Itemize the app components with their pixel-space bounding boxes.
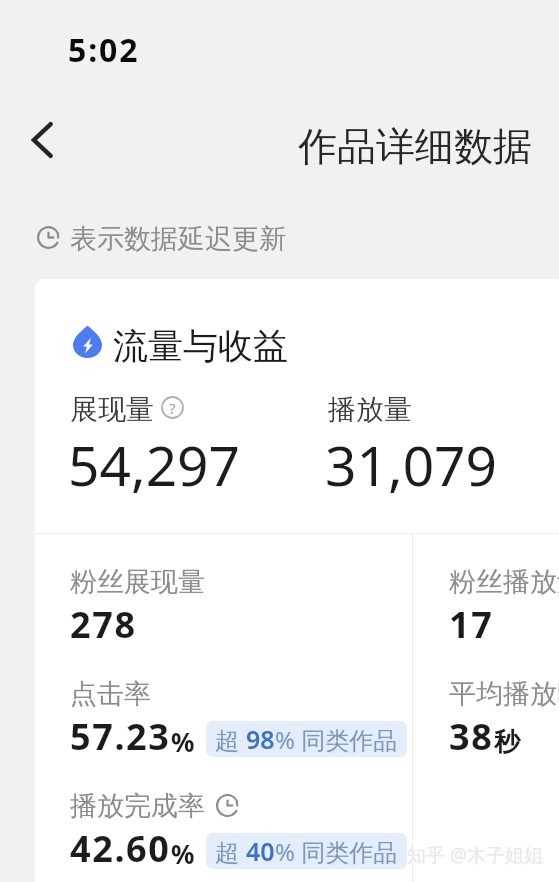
staticText: 42.60 bbox=[70, 824, 171, 873]
button[interactable]: 超 bbox=[206, 833, 407, 869]
staticText: 粉丝播放量 bbox=[449, 565, 559, 599]
staticText: 播放完成率 bbox=[70, 789, 205, 823]
staticText: 流量与收益 bbox=[113, 324, 288, 368]
button[interactable]: Back bbox=[14, 112, 70, 168]
staticText: 作品详细数据 bbox=[298, 122, 532, 171]
staticText: 40 bbox=[246, 834, 275, 868]
staticText: 54,297 bbox=[68, 427, 241, 502]
staticText: 278 bbox=[70, 600, 137, 649]
staticText: 平均播放时长 bbox=[449, 677, 559, 711]
staticText: % 同类作品 bbox=[275, 723, 398, 756]
button[interactable]: 超 bbox=[206, 721, 407, 757]
staticText: 点击率 bbox=[70, 677, 151, 711]
staticText: % bbox=[171, 724, 195, 759]
staticText: 超 bbox=[215, 835, 246, 868]
staticText: 38 bbox=[449, 712, 494, 761]
staticText: 57.23 bbox=[70, 712, 171, 761]
staticText: 98 bbox=[246, 722, 275, 756]
staticText: 粉丝展现量 bbox=[70, 565, 205, 599]
staticText: 表示数据延迟更新 bbox=[70, 222, 286, 256]
staticText: 播放量 bbox=[328, 392, 412, 427]
staticText: 5:02 bbox=[68, 28, 140, 72]
staticText: % bbox=[171, 836, 195, 871]
staticText: % 同类作品 bbox=[275, 835, 398, 868]
staticText: 秒 bbox=[494, 726, 520, 759]
staticText: 31,079 bbox=[325, 427, 498, 502]
staticText: 17 bbox=[449, 600, 494, 649]
staticText: ? bbox=[169, 398, 176, 418]
staticText: 展现量 bbox=[70, 392, 154, 427]
staticText: 知乎 @木子姐姐 bbox=[407, 842, 544, 868]
staticText: 超 bbox=[215, 723, 246, 756]
